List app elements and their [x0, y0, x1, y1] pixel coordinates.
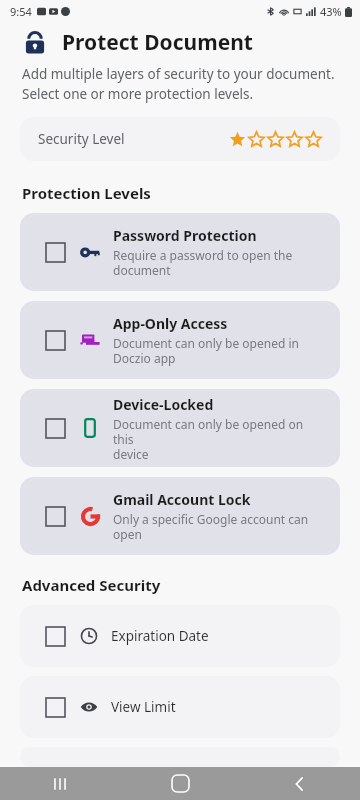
staticText: Only a specific Google account can open	[113, 511, 309, 542]
other: App only access	[80, 330, 100, 350]
button[interactable]: Checkbox	[20, 213, 340, 291]
staticText: Protection Levels	[22, 183, 151, 203]
other: Checkbox	[46, 419, 65, 438]
other: Checkbox	[46, 698, 65, 717]
staticText: Add multiple layers of security to your …	[22, 65, 335, 103]
staticText: Document can only be opened on this devi…	[113, 416, 326, 462]
other: Checkbox	[46, 243, 65, 262]
button[interactable]: Recent apps	[0, 767, 120, 800]
button[interactable]: Checkbox	[20, 605, 340, 667]
button[interactable]: Checkbox	[20, 301, 340, 379]
other: Gmail account lock	[80, 506, 101, 527]
staticText: Gmail Account Lock	[113, 490, 251, 509]
button[interactable]: Home	[120, 767, 240, 800]
other: Checkbox	[46, 507, 65, 526]
staticText: Document can only be opened in Doczio ap…	[113, 335, 299, 366]
other: Password	[79, 241, 101, 263]
staticText: Password Protection	[113, 226, 257, 245]
button[interactable]: Back	[240, 767, 360, 800]
other: View limit	[80, 698, 98, 716]
staticText: Expiration Date	[111, 627, 209, 645]
staticText: View Limit	[111, 698, 176, 716]
other: Expiration date	[80, 627, 98, 645]
staticText: Require a password to open the document	[113, 247, 293, 278]
button[interactable]: Checkbox	[20, 676, 340, 738]
staticText: Advanced Security	[22, 575, 161, 595]
other: Checkbox	[46, 331, 65, 350]
button[interactable]: Security Level	[20, 117, 340, 161]
staticText: Security Level	[38, 130, 125, 148]
other: Device locked	[80, 418, 100, 438]
staticText: 43%	[320, 4, 342, 19]
other: Checkbox	[46, 627, 65, 646]
staticText: Protect Document	[62, 28, 253, 57]
staticText: 9:54	[10, 4, 32, 19]
button[interactable]: Checkbox	[20, 477, 340, 555]
staticText: App-Only Access	[113, 314, 228, 333]
staticText: Device-Locked	[113, 395, 214, 414]
button[interactable]: Checkbox	[20, 389, 340, 467]
